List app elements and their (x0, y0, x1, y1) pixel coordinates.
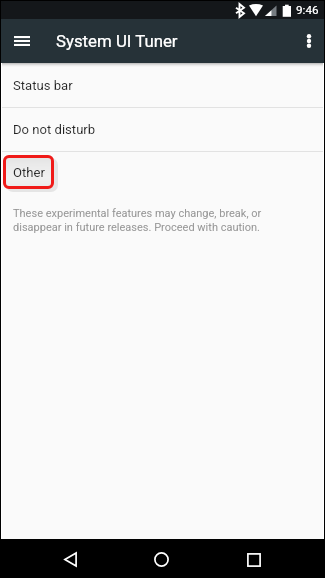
button[interactable]: Recent apps (224, 541, 284, 578)
button[interactable]: Do not disturb (2, 108, 323, 151)
button[interactable]: Other (2, 152, 323, 196)
button[interactable]: Open navigation drawer (6, 25, 38, 57)
staticText: System UI Tuner (56, 31, 178, 51)
button[interactable]: More options (294, 26, 324, 56)
staticText: 9:46 (296, 3, 319, 17)
staticText: These experimental features may change, … (13, 207, 262, 234)
staticText: Status bar (13, 78, 73, 93)
button[interactable]: Back (40, 541, 100, 578)
staticText: Do not disturb (13, 122, 96, 137)
staticText: Other (13, 165, 45, 180)
button[interactable]: Home (131, 541, 191, 578)
button[interactable]: Status bar (2, 63, 323, 107)
